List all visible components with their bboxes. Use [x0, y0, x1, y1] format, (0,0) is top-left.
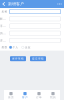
- staticText: 类型: [2, 46, 8, 49]
- staticText: 名称: [2, 10, 8, 13]
- staticText: 新增客户: [8, 1, 24, 6]
- button[interactable]: 保存草稿: [10, 56, 26, 61]
- staticText: 联系人: [0, 17, 8, 21]
- staticText: 个人: [13, 46, 19, 49]
- staticText: 所在地: [0, 31, 8, 35]
- button[interactable]: 个人: [9, 46, 19, 49]
- staticText: 手机号: [0, 24, 8, 28]
- button[interactable]: More: [55, 0, 64, 8]
- button[interactable]: 联系人: [0, 15, 64, 22]
- button[interactable]: 详细地址: [0, 37, 64, 44]
- staticText: 提交审核: [32, 57, 44, 60]
- staticText: 详细地址: [0, 39, 8, 42]
- button[interactable]: 订单: [32, 90, 46, 100]
- staticText: 我的: [50, 96, 56, 99]
- button[interactable]: 我的: [46, 90, 60, 100]
- staticText: 客户: [22, 96, 28, 99]
- button[interactable]: Back: [0, 0, 8, 8]
- button[interactable]: 企业: [22, 46, 31, 49]
- staticText: 首页: [8, 96, 14, 99]
- button[interactable]: 手机号: [0, 22, 64, 30]
- staticText: 订单: [36, 96, 42, 99]
- button[interactable]: 客户: [18, 90, 32, 100]
- button[interactable]: 所在地: [0, 30, 64, 37]
- button[interactable]: 名称: [0, 8, 64, 15]
- staticText: 保存草稿: [12, 57, 24, 60]
- staticText: 企业: [25, 46, 31, 49]
- button[interactable]: 提交审核: [30, 56, 46, 61]
- button[interactable]: 首页: [4, 90, 18, 100]
